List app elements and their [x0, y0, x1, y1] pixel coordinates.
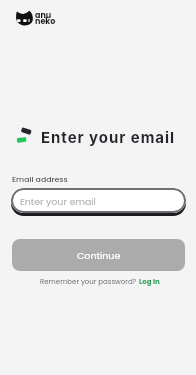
staticText: Enter your email [20, 195, 96, 208]
staticText: neko [35, 16, 56, 27]
staticText: Email address [12, 174, 68, 185]
staticText: anu [35, 10, 52, 21]
button[interactable]: Continue [12, 239, 185, 271]
staticText: Remember your password? [40, 277, 139, 287]
staticText: Continue [77, 249, 121, 262]
button[interactable]: Enter your email [11, 188, 186, 213]
button[interactable]: anu neko home [13, 7, 59, 29]
staticText: Enter your email [41, 128, 176, 146]
button[interactable]: Log in [139, 277, 160, 287]
staticText: Log in [139, 277, 160, 287]
